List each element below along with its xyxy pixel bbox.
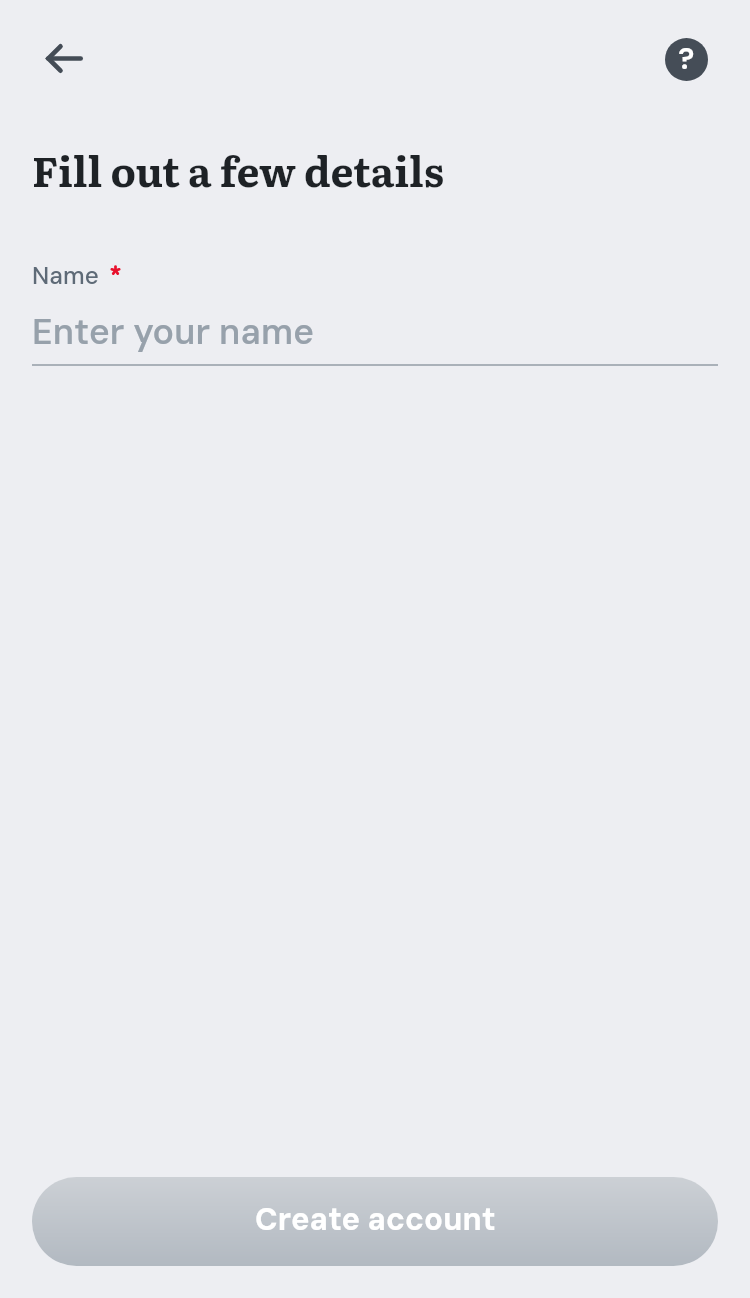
staticText: Enter your name bbox=[32, 309, 315, 355]
button[interactable]: Help bbox=[665, 38, 708, 81]
staticText: Fill out a few details bbox=[32, 139, 445, 200]
staticText: ? bbox=[678, 40, 695, 78]
staticText: Create account bbox=[255, 1199, 496, 1239]
button[interactable]: Create account bbox=[32, 1177, 718, 1266]
button[interactable]: Back bbox=[36, 30, 92, 86]
button[interactable]: Enter your name bbox=[32, 305, 718, 360]
staticText: Name bbox=[32, 260, 99, 292]
